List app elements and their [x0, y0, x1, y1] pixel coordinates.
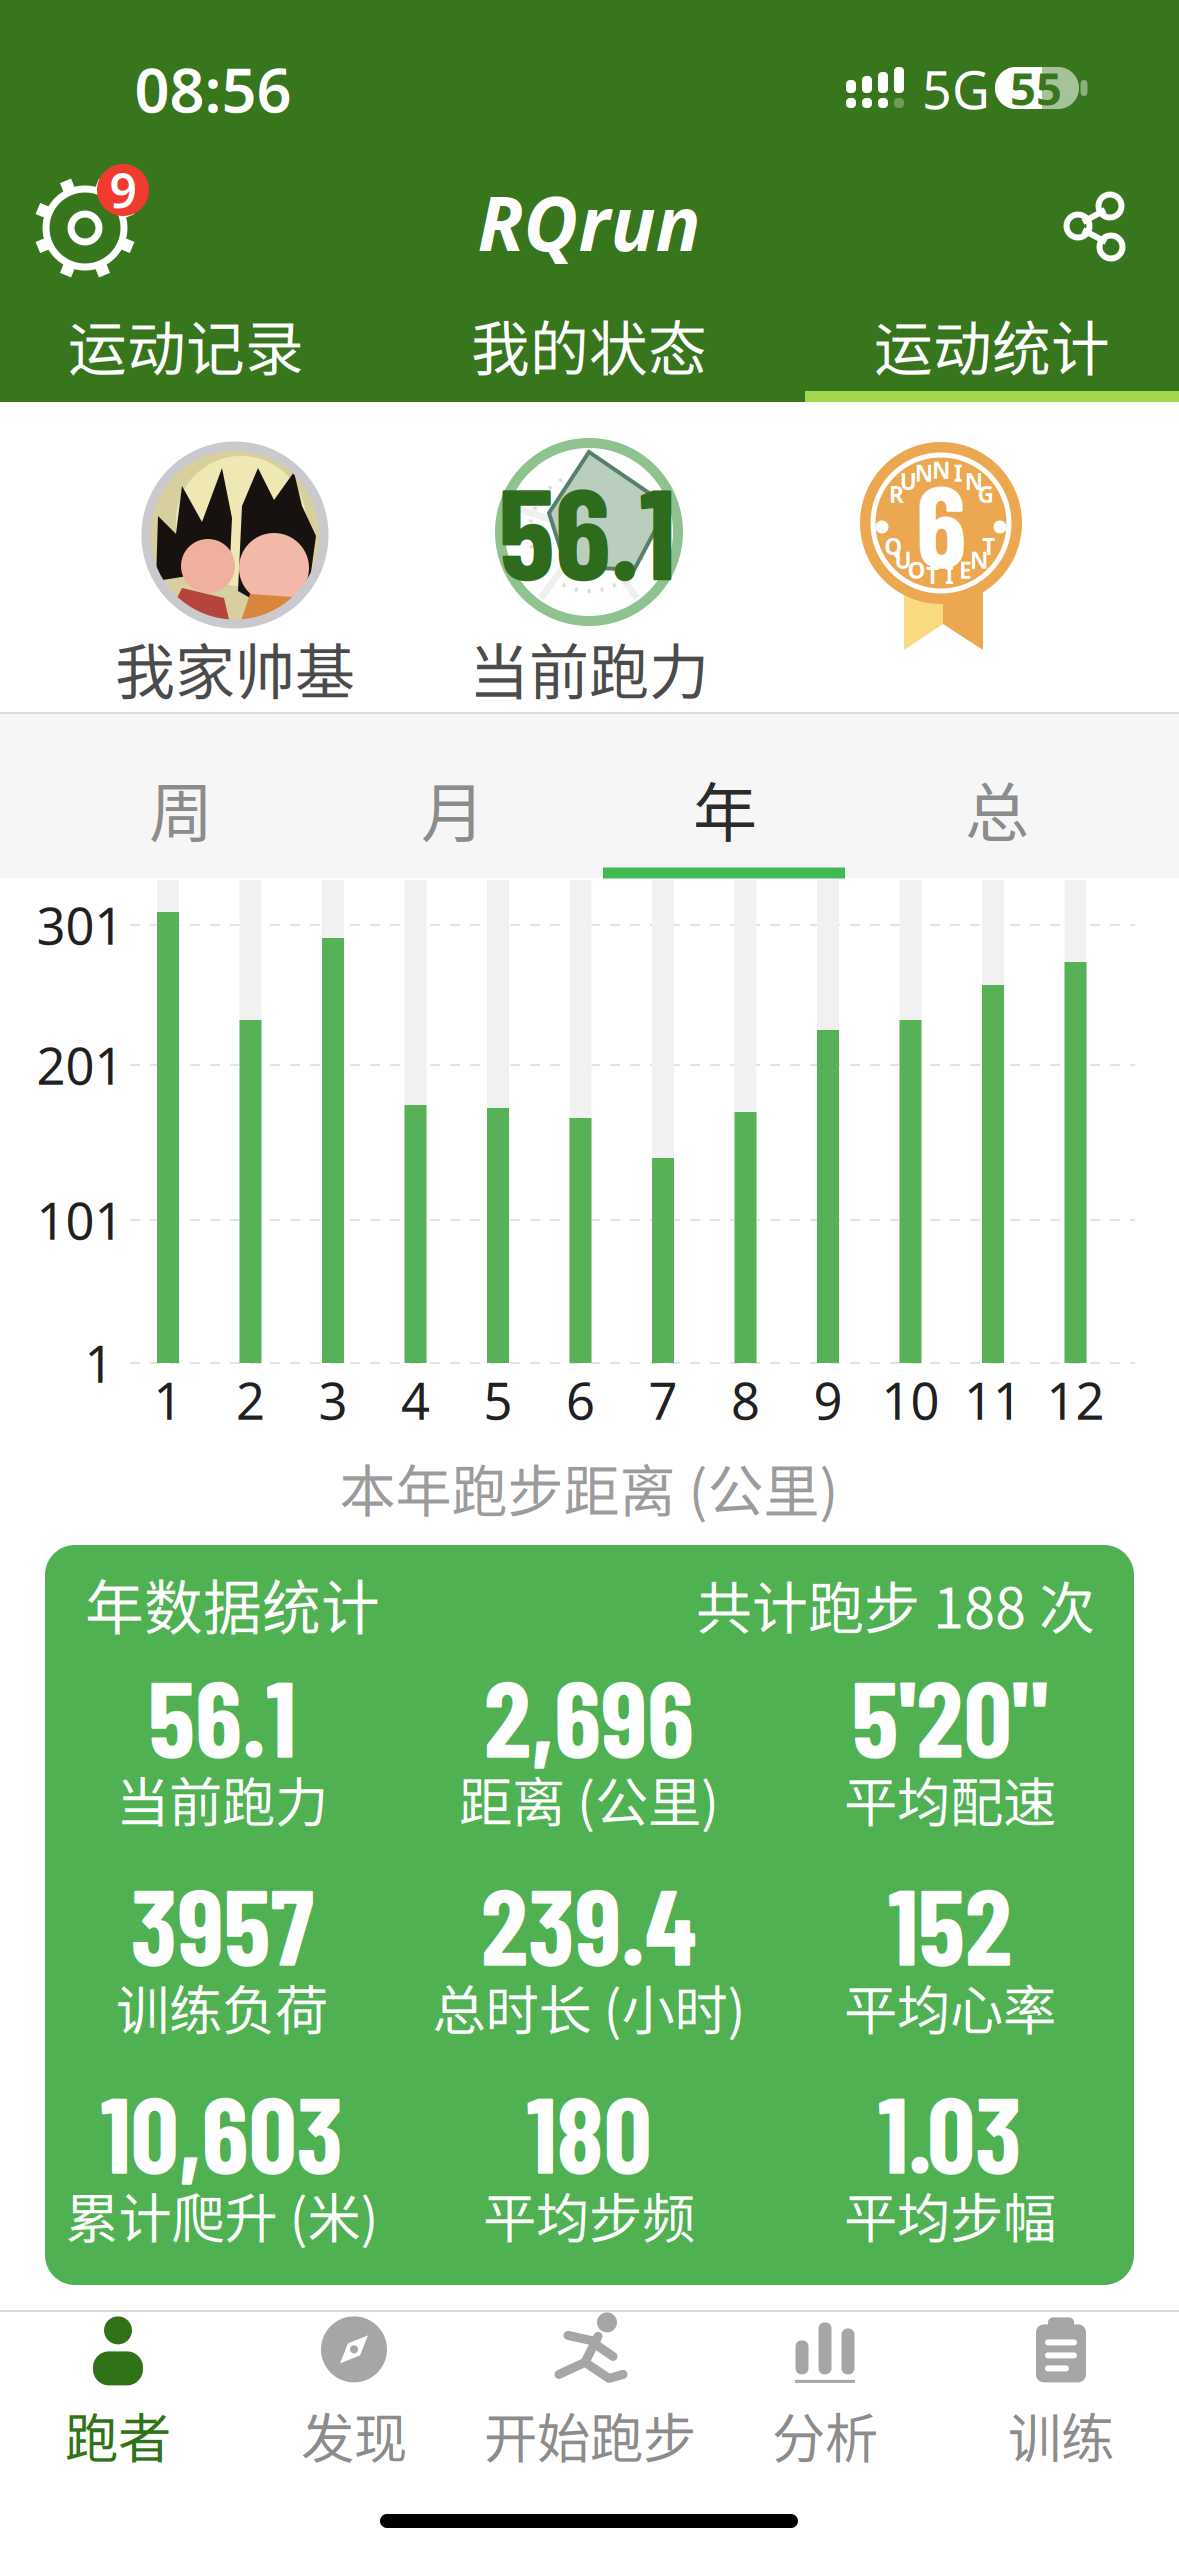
staticText: 7 [648, 1366, 677, 1434]
staticText: 08:56 [134, 48, 291, 130]
staticText: 训练负荷 [116, 1968, 328, 2046]
staticText: 1.03 [878, 2067, 1022, 2195]
staticText: U [900, 466, 917, 496]
staticText: 我的状态 [471, 302, 707, 387]
staticText: 101 [36, 1186, 123, 1254]
staticText: T [982, 531, 995, 561]
staticText: 当前跑力 [116, 1760, 328, 1838]
staticText: 总时长 (小时) [432, 1968, 745, 2046]
staticText: 运动统计 [874, 302, 1110, 387]
staticText: N [932, 455, 950, 485]
staticText: 累计爬升 (米) [65, 2176, 378, 2254]
staticText: 当前跑力 [469, 625, 709, 711]
staticText: 发现 [301, 2396, 407, 2474]
staticText: 55 [1010, 58, 1062, 118]
staticText: 12 [1046, 1366, 1104, 1434]
staticText: 周 [149, 762, 213, 854]
staticText: R [889, 479, 904, 509]
staticText: 9 [813, 1366, 842, 1434]
staticText: N [970, 545, 988, 575]
staticText: U [895, 545, 912, 575]
button[interactable]: 9 [33, 149, 163, 279]
staticText: 9 [109, 158, 136, 222]
staticText: 2 [236, 1366, 265, 1434]
staticText: 共计跑步 188 次 [696, 1563, 1095, 1645]
button[interactable] [146, 446, 324, 624]
button[interactable]: 分析 [708, 2315, 942, 2469]
staticText: 平均步频 [483, 2176, 695, 2254]
staticText: 1 [84, 1329, 113, 1397]
staticText: 平均心率 [844, 1968, 1056, 2046]
staticText: 总 [965, 762, 1029, 854]
staticText: 年 [693, 762, 757, 854]
staticText: 平均步幅 [844, 2176, 1056, 2254]
staticText: 5G [922, 54, 990, 124]
staticText: 10,603 [100, 2067, 343, 2195]
staticText: 分析 [772, 2396, 878, 2474]
button[interactable]: 运动统计 [795, 300, 1179, 390]
staticText: 1 [153, 1366, 182, 1434]
staticText: 运动记录 [68, 302, 304, 387]
staticText: 训练 [1008, 2396, 1114, 2474]
button[interactable]: 运动记录 [0, 300, 382, 390]
staticText: 239.4 [481, 1859, 697, 1987]
staticText: G [977, 479, 993, 509]
button[interactable]: 跑者 [1, 2315, 235, 2469]
staticText: 平均配速 [844, 1760, 1056, 1838]
staticText: 56.1 [148, 1651, 296, 1779]
staticText: 6 [566, 1366, 595, 1434]
button[interactable]: 月 [333, 753, 573, 863]
staticText: Q [884, 531, 902, 561]
staticText: 5 [483, 1366, 512, 1434]
staticText: I [954, 458, 963, 488]
staticText: 4 [401, 1366, 430, 1434]
staticText: 301 [36, 891, 123, 959]
staticText: 距离 (公里) [459, 1760, 719, 1838]
staticText: 我家帅基 [115, 625, 355, 711]
button[interactable]: 总 [877, 753, 1117, 863]
staticText: 年数据统计 [85, 1561, 380, 1646]
staticText: 3957 [130, 1859, 313, 1987]
button[interactable]: 发现 [237, 2315, 471, 2469]
staticText: 152 [888, 1859, 1012, 1987]
staticText: N [965, 466, 983, 496]
staticText: I [945, 560, 954, 590]
staticText: RQrun [477, 172, 700, 272]
button[interactable]: 开始跑步 [473, 2315, 707, 2469]
button[interactable]: 年 [605, 753, 845, 863]
staticText: 跑者 [65, 2396, 171, 2474]
staticText: O [908, 555, 926, 585]
staticText: 11 [964, 1366, 1022, 1434]
staticText: N [915, 458, 933, 488]
staticText: 201 [36, 1031, 123, 1099]
button[interactable] [1050, 182, 1140, 272]
button[interactable]: 周 [61, 753, 301, 863]
staticText: 8 [731, 1366, 760, 1434]
staticText: 180 [526, 2067, 651, 2195]
button[interactable]: 我的状态 [392, 300, 785, 390]
staticText: 10 [881, 1366, 939, 1434]
staticText: 56.1 [498, 452, 675, 606]
staticText: 月 [421, 762, 485, 854]
staticText: 6 [916, 453, 966, 591]
staticText: 3 [318, 1366, 347, 1434]
staticText: T [926, 560, 939, 590]
button[interactable]: 训练 [944, 2315, 1178, 2469]
staticText: 本年跑步距离 (公里) [339, 1446, 838, 1528]
staticText: 2,696 [484, 1651, 694, 1779]
staticText: 5'20" [851, 1651, 1048, 1779]
staticText: E [959, 555, 972, 585]
staticText: 开始跑步 [484, 2396, 696, 2474]
